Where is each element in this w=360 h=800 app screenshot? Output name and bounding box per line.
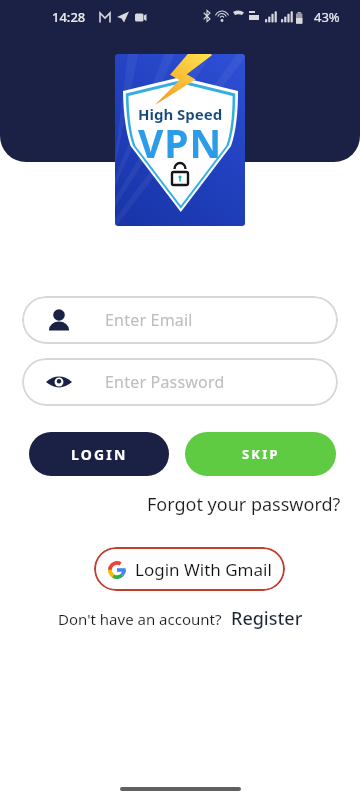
staticText: Enter Password <box>105 371 225 393</box>
button[interactable]: Forgot your password? <box>147 492 341 517</box>
staticText: 43% <box>314 8 340 26</box>
staticText: Login With Gmail <box>135 558 272 581</box>
button[interactable]: Enter Email <box>22 296 338 344</box>
staticText: SKIP <box>242 445 280 463</box>
staticText: Enter Email <box>105 309 193 331</box>
staticText: Register <box>231 606 303 631</box>
button[interactable]: SKIP <box>185 432 336 476</box>
staticText: Don't have an account? <box>58 609 222 629</box>
staticText: 14:28 <box>52 8 86 26</box>
button[interactable]: Enter Password <box>22 358 338 406</box>
staticText: LOGIN <box>71 445 128 464</box>
button[interactable]: Login With Gmail <box>94 547 285 591</box>
staticText: Forgot your password? <box>147 492 341 517</box>
button[interactable]: Register <box>231 606 303 631</box>
button[interactable]: LOGIN <box>29 432 169 476</box>
staticText: High Speed <box>138 104 223 124</box>
staticText: VPN <box>138 116 223 169</box>
